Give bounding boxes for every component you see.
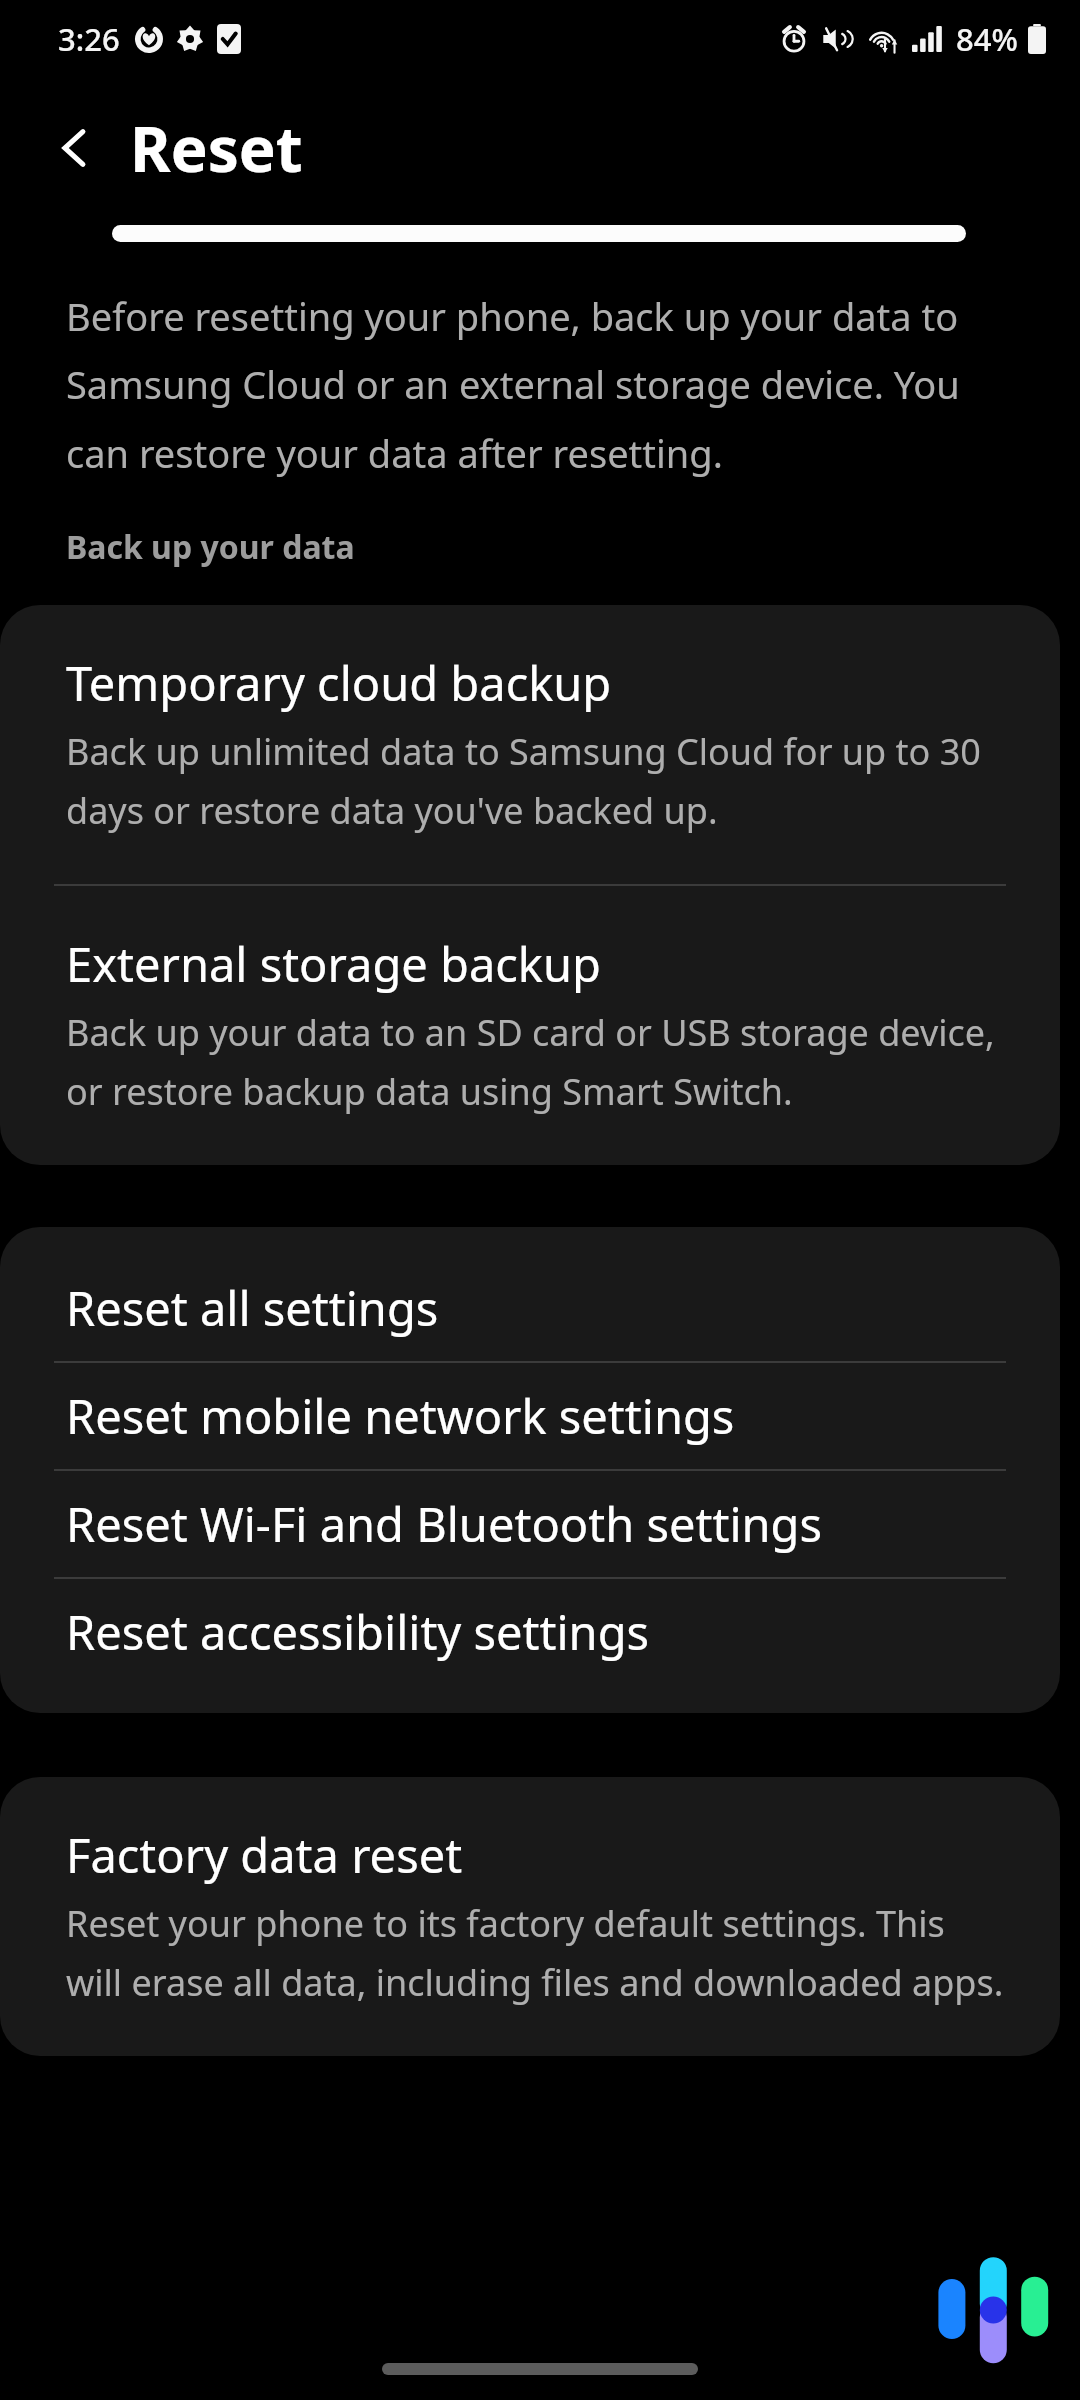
button[interactable]: Factory data reset [0, 1777, 1060, 2056]
staticText: Reset Wi-Fi and Bluetooth settings [66, 1492, 823, 1556]
button[interactable]: External storage backup [0, 886, 1060, 1165]
button[interactable]: Reset accessibility settings [0, 1579, 1060, 1685]
staticText: Reset accessibility settings [66, 1600, 650, 1664]
staticText: Back up your data to an SD card or USB s… [66, 1008, 1004, 1115]
staticText: Back up unlimited data to Samsung Cloud … [66, 727, 1004, 834]
button[interactable]: Reset mobile network settings [0, 1363, 1060, 1469]
staticText: Before resetting your phone, back up you… [66, 290, 1022, 479]
staticText: Reset all settings [66, 1276, 439, 1340]
staticText: Reset mobile network settings [66, 1384, 735, 1448]
staticText: Back up your data [66, 525, 355, 569]
staticText: Reset your phone to its factory default … [66, 1899, 1004, 2006]
button[interactable]: Reset Wi-Fi and Bluetooth settings [0, 1471, 1060, 1577]
button[interactable]: Back [30, 103, 120, 193]
staticText: Factory data reset [66, 1823, 463, 1887]
staticText: 3:26 [58, 18, 120, 60]
button[interactable]: Reset all settings [0, 1255, 1060, 1361]
staticText: 84% [956, 18, 1018, 60]
staticText: Temporary cloud backup [66, 651, 612, 715]
staticText: External storage backup [66, 932, 601, 996]
staticText: Reset [130, 106, 303, 190]
button[interactable]: Temporary cloud backup [0, 605, 1060, 884]
